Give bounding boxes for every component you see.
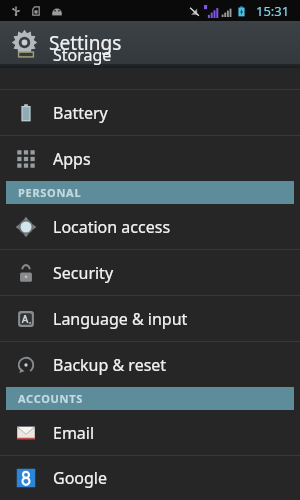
staticText: Security — [53, 262, 114, 284]
staticText: 15:31 — [256, 2, 290, 20]
button[interactable]: Location access — [0, 204, 300, 249]
staticText: Language & input — [53, 308, 188, 330]
staticText: Storage — [53, 44, 112, 65]
button[interactable]: Security — [0, 250, 300, 295]
staticText: Backup & reset — [53, 354, 167, 376]
button[interactable]: Email — [0, 410, 300, 455]
button[interactable]: Language & input — [0, 296, 300, 341]
staticText: ACCOUNTS — [18, 391, 84, 406]
button[interactable]: Backup & reset — [0, 342, 300, 387]
button[interactable]: Google — [0, 456, 300, 500]
staticText: Email — [53, 422, 95, 444]
other: Settings icon — [11, 29, 38, 56]
staticText: PERSONAL — [18, 185, 82, 200]
staticText: Battery — [53, 102, 108, 124]
staticText: Location access — [53, 216, 171, 238]
staticText: Apps — [53, 148, 91, 170]
button[interactable]: Apps — [0, 136, 300, 181]
staticText: Settings — [49, 30, 122, 56]
button[interactable]: Battery — [0, 90, 300, 135]
staticText: Google — [53, 467, 108, 489]
button[interactable]: Settings icon — [0, 21, 300, 64]
